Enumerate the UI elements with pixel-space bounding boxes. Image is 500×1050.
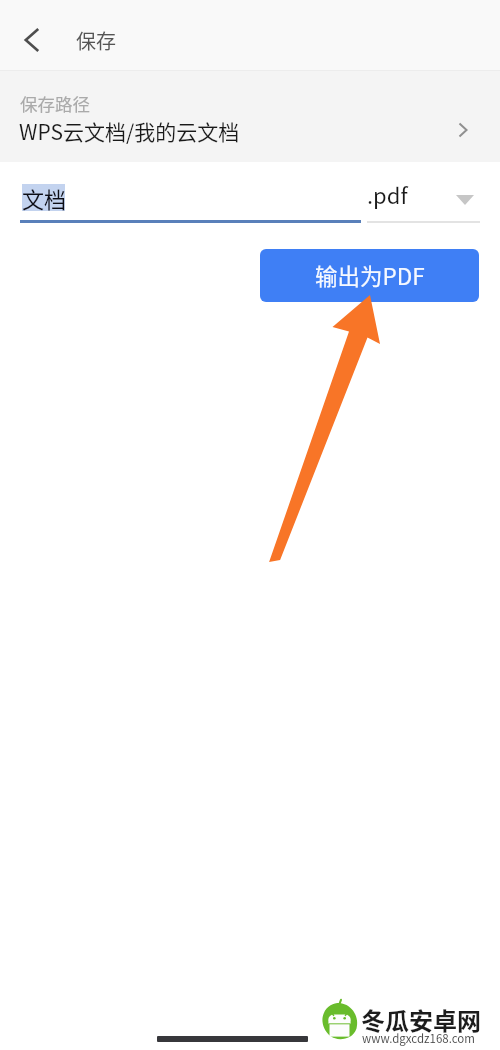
staticText: WPS云文档/我的云文档 — [19, 116, 240, 146]
button[interactable]: .pdf — [364, 175, 478, 209]
staticText: 文档 — [22, 182, 67, 214]
staticText: www.dgxcdz168.com — [362, 1030, 475, 1047]
staticText: .pdf — [367, 178, 408, 210]
staticText: 保存路径 — [20, 91, 90, 116]
button[interactable]: Back — [10, 18, 54, 62]
button[interactable]: 文档 — [20, 176, 361, 216]
button[interactable]: 输出为PDF — [260, 249, 479, 302]
staticText: 输出为PDF — [315, 259, 425, 292]
staticText: 冬瓜安卓网 — [361, 1002, 481, 1037]
button[interactable]: 保存路径 — [0, 71, 500, 162]
staticText: 保存 — [76, 26, 116, 55]
